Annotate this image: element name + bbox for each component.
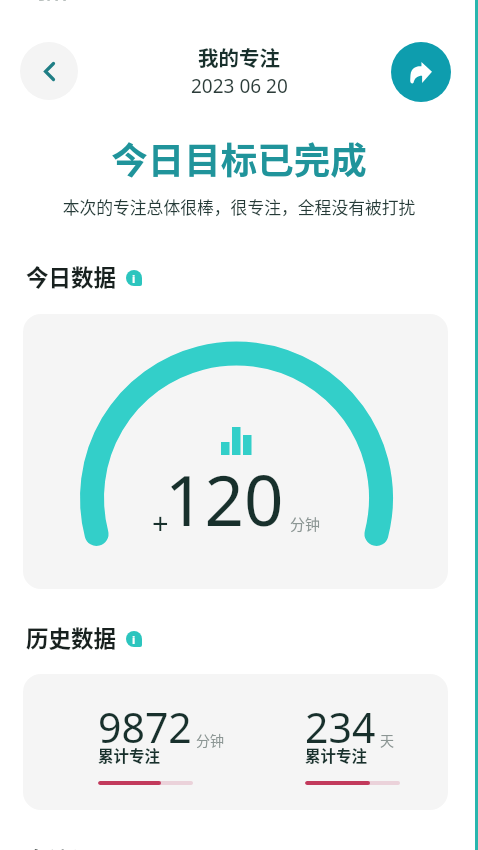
staticText: 累计专注 bbox=[98, 744, 161, 766]
staticText: 历史数据 bbox=[26, 621, 117, 654]
staticText: 本次的专注总体很棒，很专注，全程没有被打扰 bbox=[0, 195, 478, 219]
button[interactable]: Back bbox=[20, 42, 78, 100]
staticText: i bbox=[132, 271, 136, 286]
button[interactable]: Share bbox=[391, 42, 451, 102]
staticText: 今日数据 bbox=[26, 260, 117, 293]
staticText: 234 bbox=[305, 699, 376, 755]
staticText: 9872 bbox=[98, 699, 192, 755]
staticText: 分钟 bbox=[290, 513, 321, 535]
staticText: 分钟 bbox=[196, 730, 224, 750]
staticText: 我的专注 bbox=[198, 42, 280, 72]
staticText: 2023 06 20 bbox=[191, 73, 288, 99]
staticText: 120 bbox=[165, 452, 284, 546]
staticText: 专注记录 bbox=[26, 843, 117, 850]
staticText: i bbox=[132, 632, 136, 647]
staticText: 9:41 bbox=[38, 0, 68, 5]
staticText: 天 bbox=[380, 730, 394, 750]
staticText: + bbox=[152, 503, 169, 542]
staticText: 累计专注 bbox=[305, 744, 368, 766]
staticText: 今日目标已完成 bbox=[0, 132, 478, 185]
